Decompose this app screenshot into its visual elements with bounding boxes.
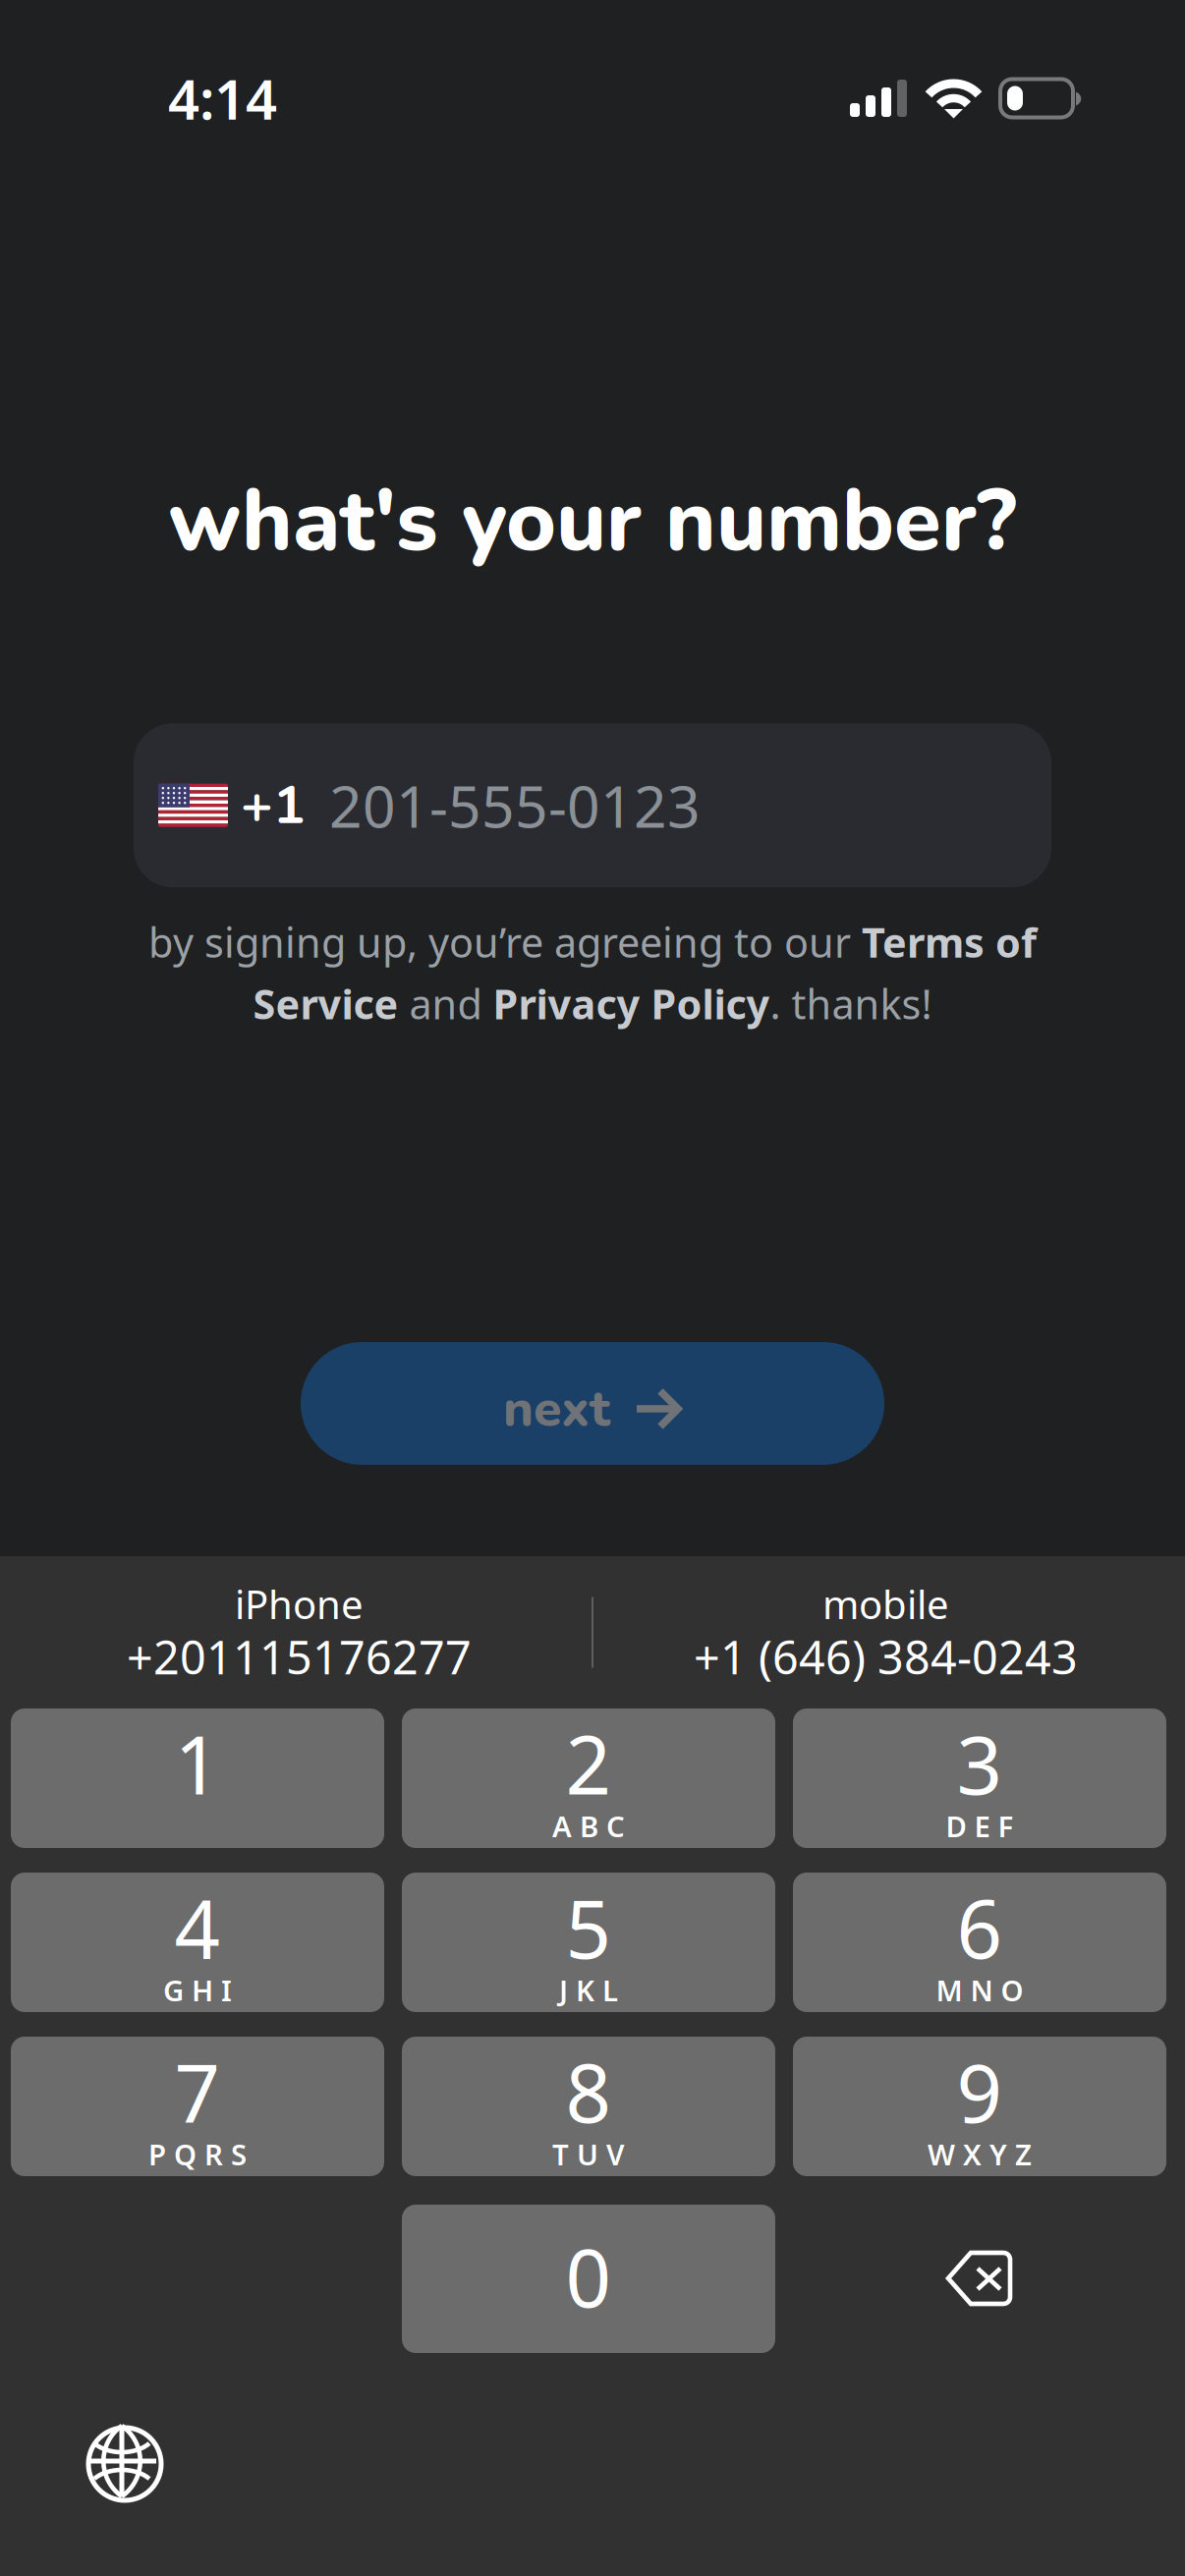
staticText: 201-555-0123 — [329, 767, 701, 844]
button[interactable]: 6 — [793, 1873, 1166, 2012]
staticText: +201115176277 — [127, 1626, 472, 1687]
staticText: iPhone — [235, 1578, 364, 1630]
button[interactable]: 7 — [11, 2037, 384, 2176]
staticText: 9 — [957, 2039, 1003, 2145]
staticText: . thanks! — [770, 977, 932, 1031]
staticText: mobile — [822, 1578, 949, 1630]
button[interactable]: 5 — [402, 1873, 775, 2012]
staticText: what's your number? — [168, 464, 1017, 580]
staticText: 5 — [565, 1875, 612, 1981]
button[interactable]: mobile — [593, 1568, 1178, 1696]
staticText: 4:14 — [168, 62, 277, 135]
button[interactable]: 2 — [402, 1708, 775, 1848]
staticText: and — [398, 977, 493, 1031]
staticText: G H I — [163, 1971, 232, 2009]
button[interactable]: 3 — [793, 1708, 1166, 1848]
staticText: J K L — [559, 1971, 618, 2009]
staticText: T U V — [552, 2135, 625, 2173]
staticText: 0 — [565, 2223, 612, 2329]
staticText: Terms of — [862, 915, 1037, 969]
staticText: M N O — [936, 1971, 1023, 2009]
staticText: 8 — [565, 2039, 612, 2145]
button[interactable]: 0 — [402, 2205, 775, 2353]
staticText: Service — [253, 977, 398, 1031]
button[interactable]: iPhone — [7, 1568, 592, 1696]
staticText: A B C — [552, 1807, 625, 1845]
staticText: +1 — [241, 769, 306, 842]
staticText: W X Y Z — [928, 2135, 1032, 2173]
staticText: P Q R S — [148, 2135, 247, 2173]
staticText: 6 — [957, 1875, 1003, 1981]
staticText: 4 — [174, 1875, 221, 1981]
button[interactable]: next — [301, 1342, 884, 1465]
staticText: D E F — [946, 1807, 1014, 1845]
staticText: 7 — [174, 2039, 221, 2145]
button[interactable]: 1 — [11, 1708, 384, 1848]
staticText: by signing up, you’re agreeing to our — [148, 915, 862, 969]
button[interactable]: 9 — [793, 2037, 1166, 2176]
button[interactable]: Change keyboard — [66, 2405, 184, 2523]
button[interactable]: +1 — [134, 723, 1051, 887]
staticText: 1 — [174, 1710, 221, 1817]
button[interactable]: Delete — [793, 2205, 1166, 2353]
staticText: 2 — [565, 1710, 612, 1817]
button[interactable]: 4 — [11, 1873, 384, 2012]
staticText: next — [503, 1374, 610, 1444]
button[interactable]: 8 — [402, 2037, 775, 2176]
staticText: +1 (646) 384-0243 — [694, 1626, 1078, 1687]
staticText: Privacy Policy — [493, 977, 770, 1031]
staticText: 3 — [957, 1710, 1003, 1817]
